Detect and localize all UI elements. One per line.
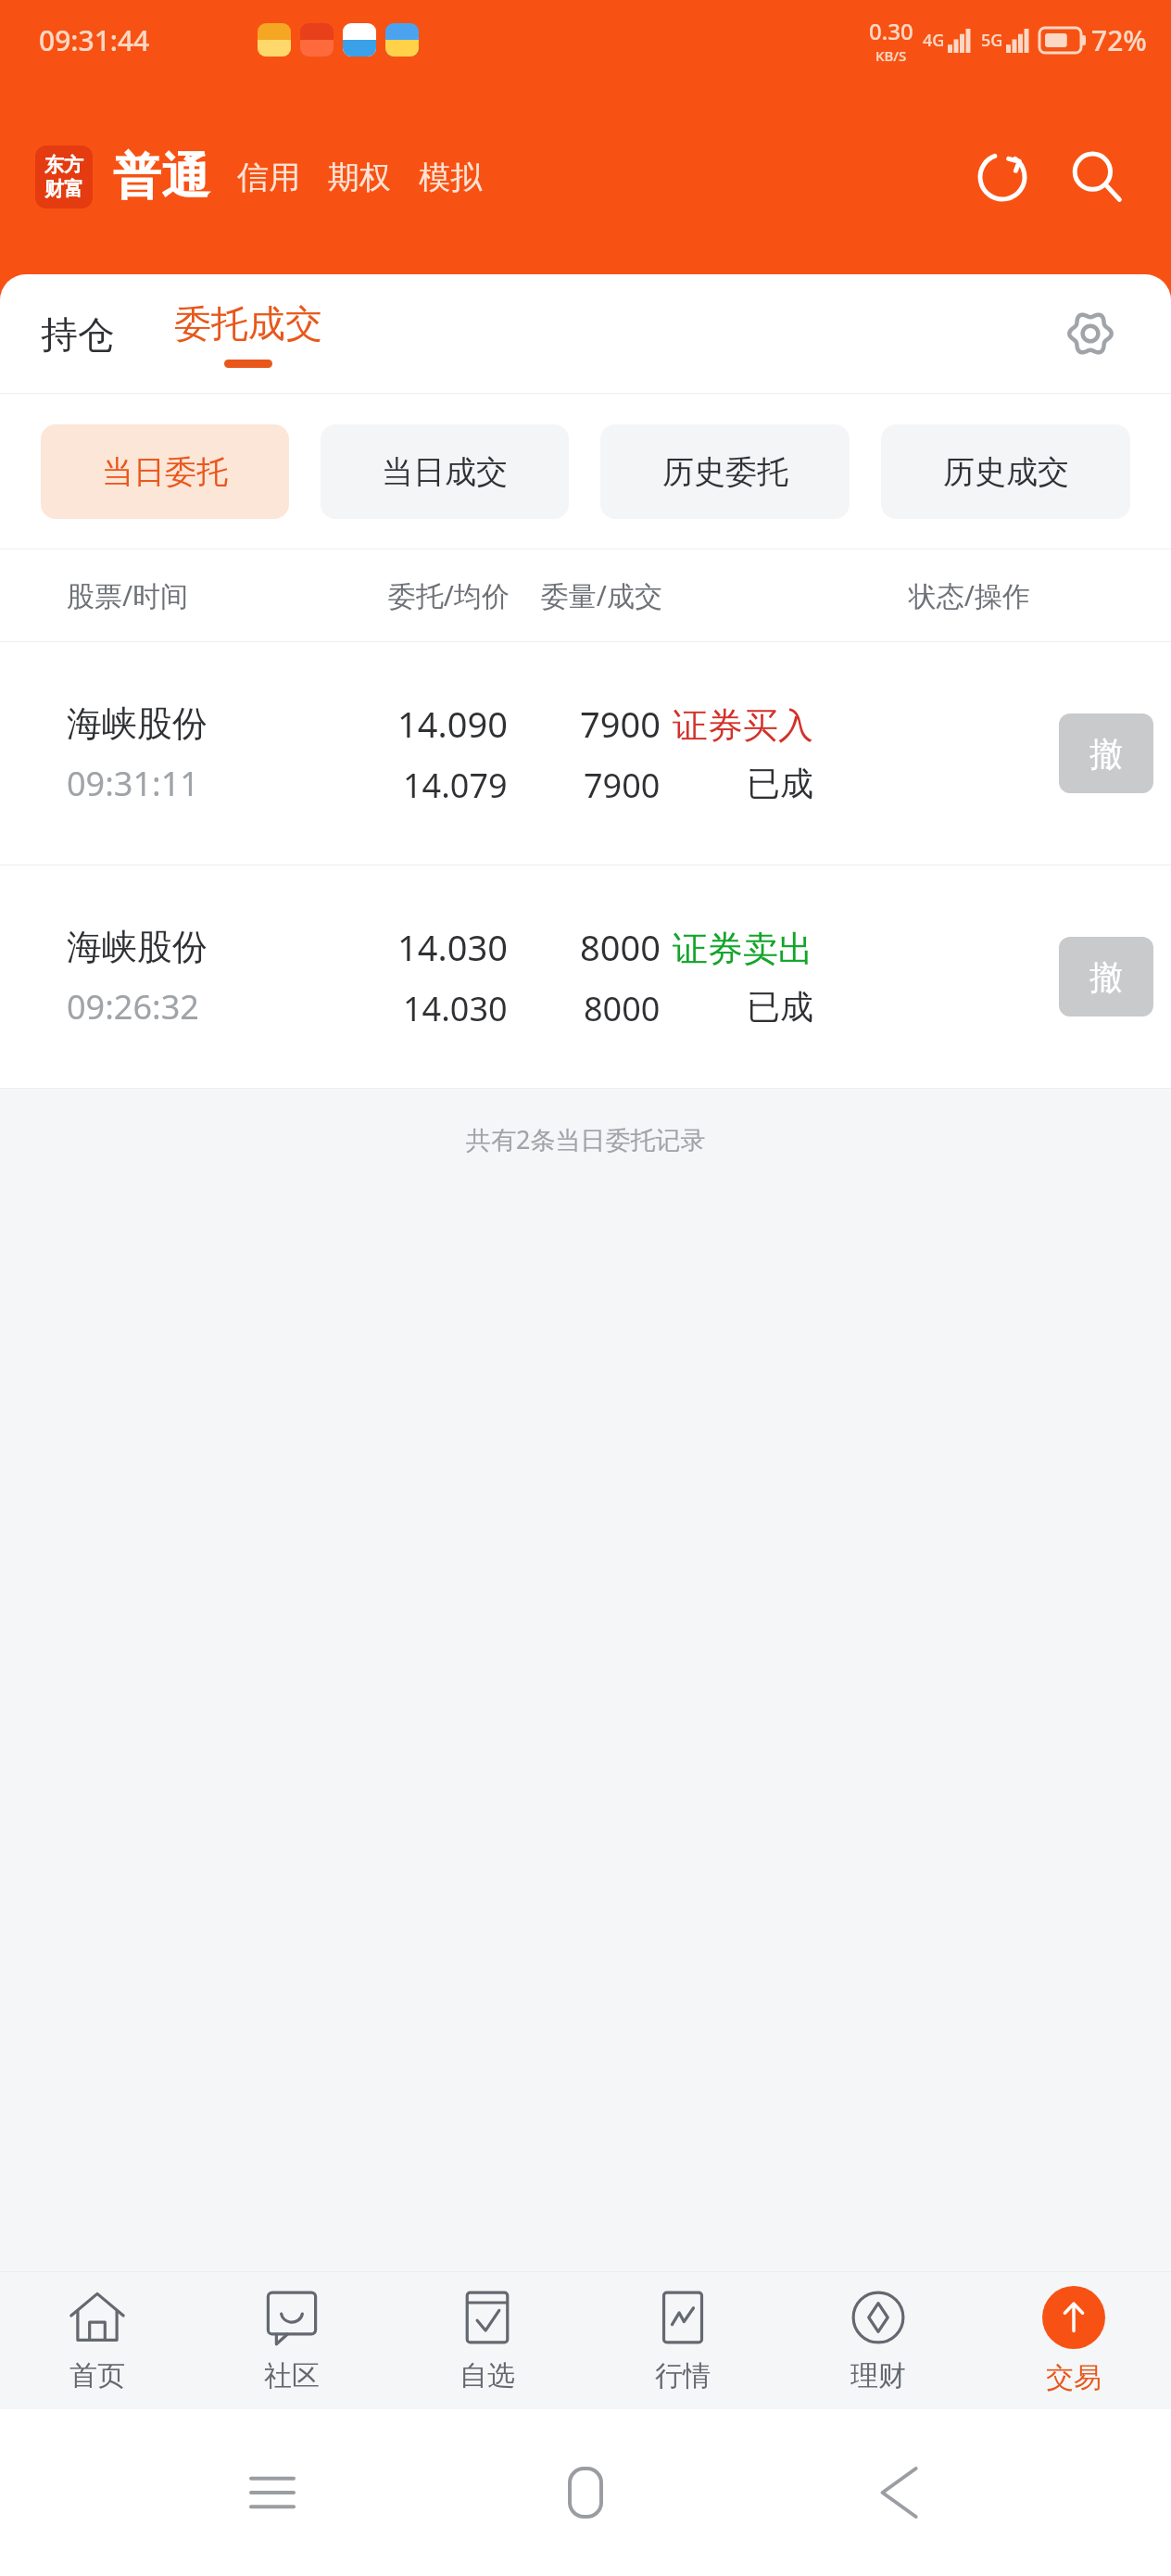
staticText: 09:26:32 [67, 984, 199, 1029]
button[interactable]: 模拟 [415, 158, 485, 197]
staticText: 股票/时间 [67, 576, 189, 614]
button[interactable]: 当日委托 [41, 424, 289, 519]
staticText: 8000 [580, 923, 661, 971]
button[interactable]: 历史成交 [881, 424, 1130, 519]
staticText: 4G [923, 29, 945, 52]
button[interactable]: 理财 [780, 2272, 976, 2409]
button[interactable]: 当日成交 [321, 424, 569, 519]
staticText: 期权 [328, 158, 391, 197]
staticText: 持仓 [41, 311, 115, 358]
button[interactable]: 行情 [585, 2272, 780, 2409]
button[interactable]: 自选 [389, 2272, 585, 2409]
button[interactable]: Refresh [967, 142, 1038, 212]
button[interactable]: 交易 [976, 2272, 1171, 2409]
staticText: 海峡股份 [67, 925, 208, 969]
staticText: 财富 [44, 177, 83, 201]
staticText: 首页 [69, 2358, 125, 2393]
staticText: 已成 [747, 986, 813, 1028]
staticText: 当日委托 [102, 452, 228, 492]
staticText: 共有2条当日委托记录 [466, 1122, 706, 1156]
button[interactable]: 信用 [233, 158, 304, 197]
staticText: 7900 [584, 763, 661, 808]
staticText: 历史成交 [943, 452, 1069, 492]
staticText: 信用 [237, 158, 300, 197]
staticText: 证券卖出 [673, 927, 813, 971]
staticText: 证券买入 [673, 703, 813, 748]
button[interactable]: 历史委托 [600, 424, 850, 519]
staticText: 14.079 [403, 763, 508, 808]
staticText: 14.090 [397, 700, 508, 748]
staticText: 撤 [1089, 733, 1123, 775]
staticText: 14.030 [403, 986, 508, 1031]
staticText: 社区 [264, 2358, 320, 2393]
staticText: KB/S [875, 46, 907, 65]
staticText: 普通 [113, 146, 209, 208]
staticText: 海峡股份 [67, 701, 208, 746]
staticText: 0.30 [869, 16, 913, 46]
staticText: 5G [981, 29, 1003, 52]
button[interactable]: 海峡股份 [0, 642, 1171, 865]
staticText: 自选 [460, 2358, 515, 2393]
staticText: 8000 [584, 986, 661, 1031]
button[interactable]: 社区 [195, 2272, 389, 2409]
button[interactable]: 期权 [324, 158, 395, 197]
staticText: 14.030 [397, 923, 508, 971]
button[interactable]: Back [858, 2451, 941, 2534]
button[interactable]: Recents [231, 2451, 314, 2534]
staticText: 72% [1091, 21, 1147, 59]
staticText: 委托成交 [174, 300, 322, 347]
staticText: 撤 [1089, 956, 1123, 998]
staticText: 已成 [747, 763, 813, 804]
button[interactable]: 委托成交 [165, 289, 332, 379]
staticText: 状态/操作 [556, 576, 1030, 614]
staticText: 7900 [580, 700, 661, 748]
staticText: 09:31:44 [39, 21, 150, 59]
button[interactable]: 撤 [1059, 937, 1153, 1017]
button[interactable]: 持仓 [31, 300, 124, 369]
button[interactable]: 海峡股份 [0, 865, 1171, 1088]
button[interactable]: 首页 [0, 2272, 195, 2409]
staticText: 交易 [1046, 2360, 1102, 2395]
button[interactable]: 普通 [113, 146, 209, 208]
staticText: 委量/成交 [389, 576, 662, 614]
staticText: 当日成交 [382, 452, 508, 492]
staticText: 历史委托 [662, 452, 788, 492]
staticText: 理财 [850, 2358, 906, 2393]
staticText: 委托/均价 [232, 576, 510, 614]
button[interactable]: Settings [1058, 301, 1123, 366]
button[interactable]: Home [544, 2451, 627, 2534]
staticText: 东方 [44, 153, 83, 177]
staticText: 模拟 [419, 158, 482, 197]
button[interactable]: 撤 [1059, 713, 1153, 793]
staticText: 行情 [655, 2358, 711, 2393]
staticText: 09:31:11 [67, 761, 199, 806]
button[interactable]: Search [1062, 142, 1132, 212]
